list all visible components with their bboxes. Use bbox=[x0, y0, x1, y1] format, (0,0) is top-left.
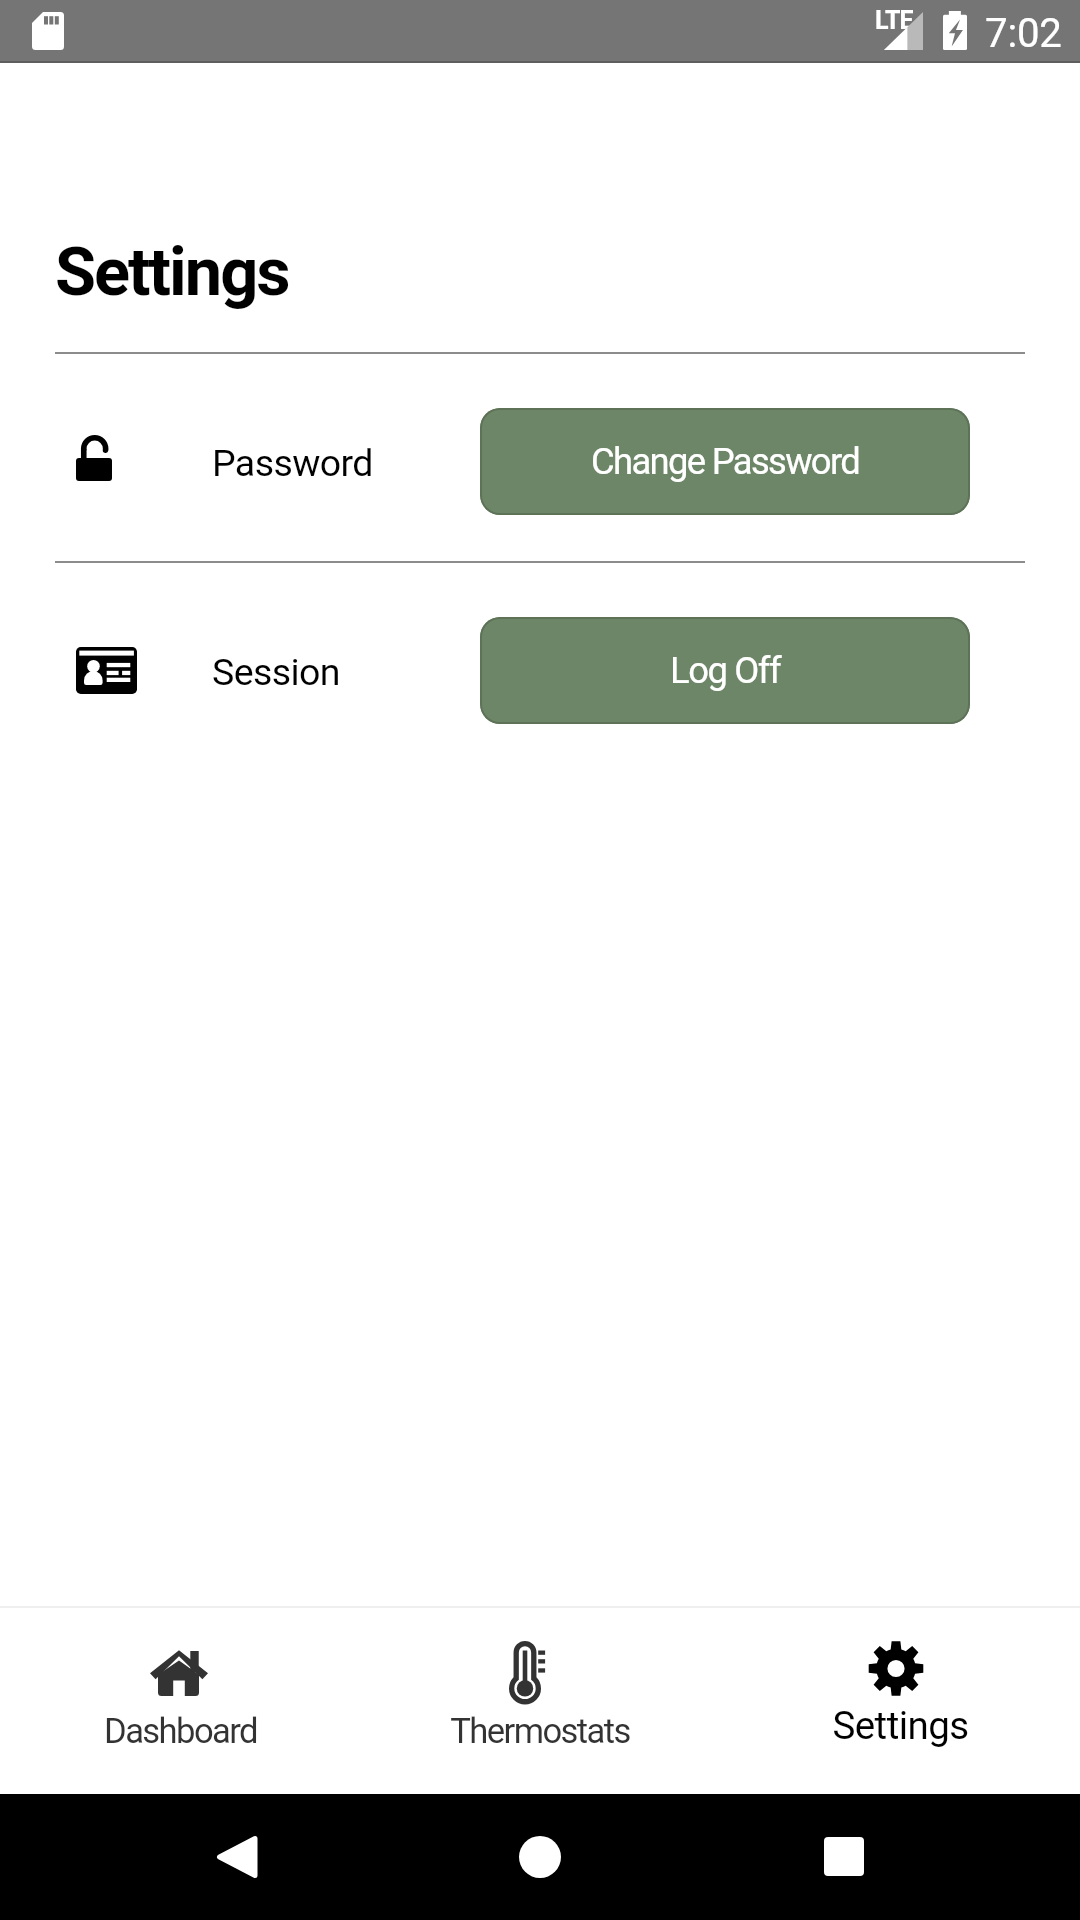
staticText: Thermostats bbox=[450, 1711, 630, 1752]
button[interactable]: Recents bbox=[824, 1837, 864, 1876]
staticText: 7:02 bbox=[985, 10, 1062, 57]
button[interactable]: Home bbox=[519, 1836, 561, 1878]
button[interactable]: Log Off bbox=[480, 617, 970, 724]
staticText: Password bbox=[212, 441, 373, 485]
button[interactable]: Change Password bbox=[480, 408, 970, 515]
button[interactable]: Thermostats bbox=[360, 1608, 720, 1794]
staticText: Session bbox=[212, 650, 340, 694]
staticText: Dashboard bbox=[104, 1711, 257, 1752]
staticText: Change Password bbox=[591, 440, 860, 483]
button[interactable]: Back bbox=[217, 1836, 255, 1878]
staticText: Settings bbox=[55, 233, 289, 311]
staticText: Settings bbox=[832, 1703, 969, 1748]
button[interactable]: Dashboard bbox=[0, 1608, 360, 1794]
staticText: Log Off bbox=[670, 649, 781, 692]
staticText: LTE bbox=[875, 6, 913, 35]
button[interactable]: Settings bbox=[720, 1608, 1080, 1794]
